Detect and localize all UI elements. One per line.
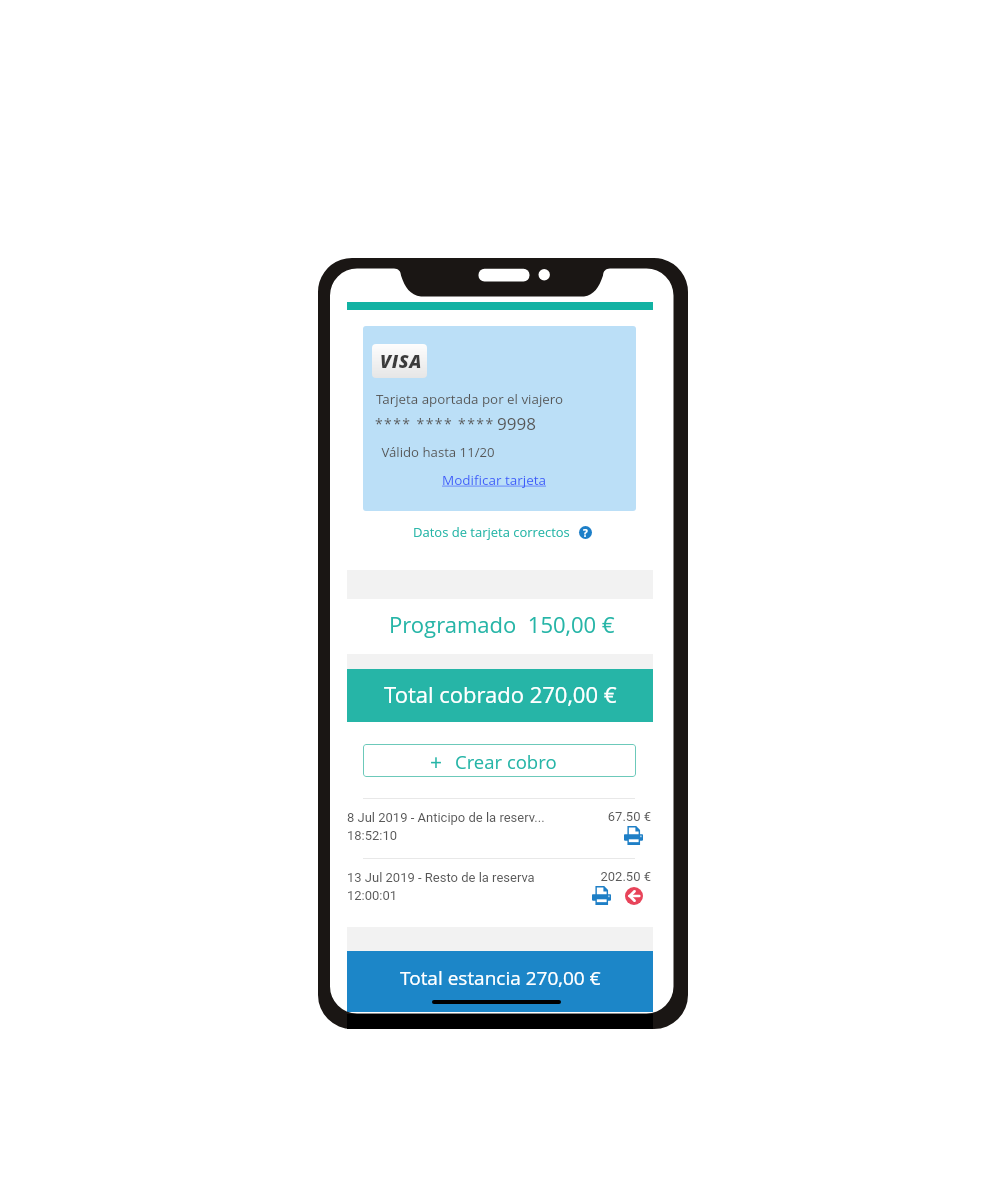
staticText: + xyxy=(430,748,443,777)
button[interactable]: Devolver xyxy=(624,886,643,905)
staticText: Total estancia 270,00 € xyxy=(400,965,601,991)
staticText: Válido hasta 11/20 xyxy=(378,443,495,461)
button[interactable]: 8 Jul 2019 - Anticipo de la reserv... xyxy=(330,809,674,857)
button[interactable]: Imprimir xyxy=(624,826,643,845)
button[interactable]: + xyxy=(363,744,636,777)
button[interactable]: Imprimir xyxy=(592,886,611,905)
staticText: 67.50 € xyxy=(607,809,651,824)
button[interactable]: Modificar tarjeta xyxy=(442,471,547,489)
staticText: 202.50 € xyxy=(600,869,651,884)
staticText: Datos de tarjeta correctos xyxy=(413,523,570,541)
staticText: VISA xyxy=(380,349,422,374)
staticText: **** **** **** xyxy=(375,414,495,433)
staticText: 12:00:01 xyxy=(347,888,398,903)
staticText: Programado 150,00 € xyxy=(389,609,615,639)
button[interactable]: 13 Jul 2019 - Resto de la reserva xyxy=(330,869,674,917)
staticText: Tarjeta aportada por el viajero xyxy=(376,390,564,408)
staticText: 13 Jul 2019 - Resto de la reserva xyxy=(347,870,535,885)
staticText: 8 Jul 2019 - Anticipo de la reserv... xyxy=(347,810,545,825)
staticText: Crear cobro xyxy=(455,749,557,774)
button[interactable]: Datos de tarjeta correctos xyxy=(330,523,674,541)
staticText: Total cobrado 270,00 € xyxy=(384,679,617,709)
staticText: ? xyxy=(583,526,588,539)
staticText: 9998 xyxy=(497,412,536,435)
staticText: 18:52:10 xyxy=(347,828,398,843)
